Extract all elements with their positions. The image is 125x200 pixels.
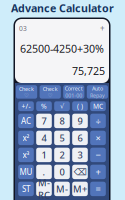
staticText: ♡ [48,92,53,99]
staticText: x² [22,133,29,143]
button[interactable]: Check [40,85,61,99]
button[interactable]: ⌫ [72,165,88,179]
staticText: 1 [41,149,46,161]
staticText: Check [19,85,34,92]
button[interactable]: Auto [87,85,108,99]
button[interactable]: 8 [54,114,70,128]
button[interactable]: Check [16,85,37,99]
button[interactable]: x³ [18,148,34,162]
staticText: 6 [77,132,82,144]
staticText: % [41,102,47,111]
staticText: ( ) [77,102,83,111]
staticText: MU [19,167,32,177]
staticText: 3 [77,149,82,161]
button[interactable]: 5 [54,131,70,145]
staticText: x³ [22,150,29,160]
staticText: 0 [59,166,64,178]
button[interactable]: × [90,131,106,145]
staticText: AC [21,116,31,126]
staticText: +/- [21,102,30,111]
staticText: Advance Calculator [11,1,114,15]
staticText: 03 [19,24,27,33]
staticText: Auto [92,85,103,92]
staticText: = [95,183,100,195]
button[interactable]: x² [18,131,34,145]
button[interactable]: ( ) [72,101,88,111]
button[interactable]: % [36,101,52,111]
staticText: 4 [41,132,46,144]
button[interactable]: +/- [18,101,34,111]
button[interactable]: √ [54,101,70,111]
button[interactable]: MRC [36,182,52,196]
staticText: 75,725 [72,64,105,78]
staticText: 2 [59,149,64,161]
staticText: ⌫ [73,167,86,177]
button[interactable]: + [90,165,106,179]
staticText: ST [22,184,30,194]
staticText: M- [56,183,68,195]
staticText: 5 [59,132,64,144]
staticText: + [100,23,105,34]
button[interactable]: M+ [72,182,88,196]
staticText: . [42,166,45,178]
button[interactable]: 1 [36,148,52,162]
button[interactable]: ÷ [90,114,106,128]
staticText: √ [60,102,64,110]
staticText: 9 [77,115,82,127]
staticText: + [95,166,100,178]
button[interactable]: = [90,182,106,196]
button[interactable]: . [36,165,52,179]
staticText: Check [43,85,58,92]
button[interactable]: 0 [54,165,70,179]
button[interactable]: AC [18,114,34,128]
button[interactable]: 9 [72,114,88,128]
button[interactable]: − [90,148,106,162]
staticText: ♡ [24,92,29,99]
staticText: 7 [41,115,46,127]
button[interactable]: Correct [63,85,84,99]
staticText: 001-00 [65,92,82,99]
button[interactable]: 3 [72,148,88,162]
button[interactable]: 6 [72,131,88,145]
staticText: − [95,149,100,161]
staticText: × [95,132,100,144]
button[interactable]: 2 [54,148,70,162]
staticText: 8 [59,115,64,127]
button[interactable]: MC [90,101,106,111]
staticText: MRC [38,176,50,200]
staticText: M+ [73,183,87,195]
button[interactable]: ST [18,182,34,196]
button[interactable]: 7 [36,114,52,128]
button[interactable]: 4 [36,131,52,145]
staticText: 62500-4250+30% [20,42,104,56]
button[interactable]: M- [54,182,70,196]
button[interactable]: MU [18,165,34,179]
staticText: ÷ [95,115,100,127]
staticText: MC [93,102,103,111]
staticText: Correct [65,85,83,92]
staticText: Repay [90,92,105,99]
